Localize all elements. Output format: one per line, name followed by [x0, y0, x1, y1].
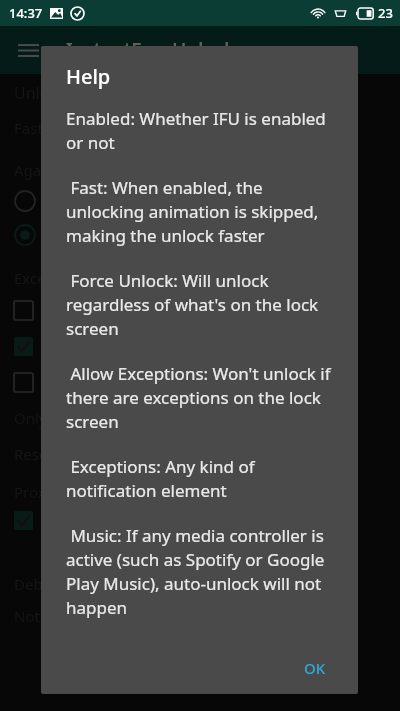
button[interactable]: Unlock options: [14, 82, 127, 104]
button[interactable]: Proximity: [14, 482, 81, 502]
staticText: Allow Exceptions: Won't unlock if there …: [66, 362, 344, 433]
staticText: Music: If any media controller is active…: [66, 524, 344, 619]
button[interactable]: Again after: [14, 160, 92, 180]
staticText: Fast: When enabled, the unlocking animat…: [66, 176, 344, 247]
button[interactable]: Music: [14, 336, 400, 356]
button[interactable]: Only when: [14, 408, 90, 428]
staticText: OK: [304, 658, 326, 678]
button[interactable]: Open navigation menu: [10, 32, 46, 68]
staticText: Allow exceptions: [47, 300, 165, 320]
staticText: 23: [378, 4, 393, 22]
staticText: Force Unlock: Will unlock regardless of …: [66, 269, 344, 340]
staticText: Never: [50, 191, 92, 211]
button[interactable]: Use sensor: [14, 510, 400, 530]
staticText: 14:37: [9, 4, 43, 22]
button[interactable]: Allow exceptions: [14, 300, 400, 320]
button[interactable]: OK: [294, 652, 336, 684]
staticText: Enabled: Whether IFU is enabled or not: [66, 107, 344, 154]
button[interactable]: Exceptions: [14, 268, 90, 288]
button[interactable]: Calls: [14, 372, 400, 392]
button[interactable]: Debug: [14, 574, 62, 594]
button[interactable]: Fast: [14, 118, 43, 138]
staticText: Help: [66, 63, 111, 90]
button[interactable]: Never: [14, 190, 400, 212]
button[interactable]: Reset: [14, 444, 53, 464]
staticText: Always: [50, 225, 99, 245]
staticText: Exceptions: Any kind of notification ele…: [66, 455, 344, 502]
button[interactable]: Always: [14, 224, 400, 246]
staticText: InstantFaceUnlock: [66, 37, 235, 63]
button[interactable]: Notifications: [14, 606, 104, 626]
staticText: Calls: [47, 372, 80, 392]
